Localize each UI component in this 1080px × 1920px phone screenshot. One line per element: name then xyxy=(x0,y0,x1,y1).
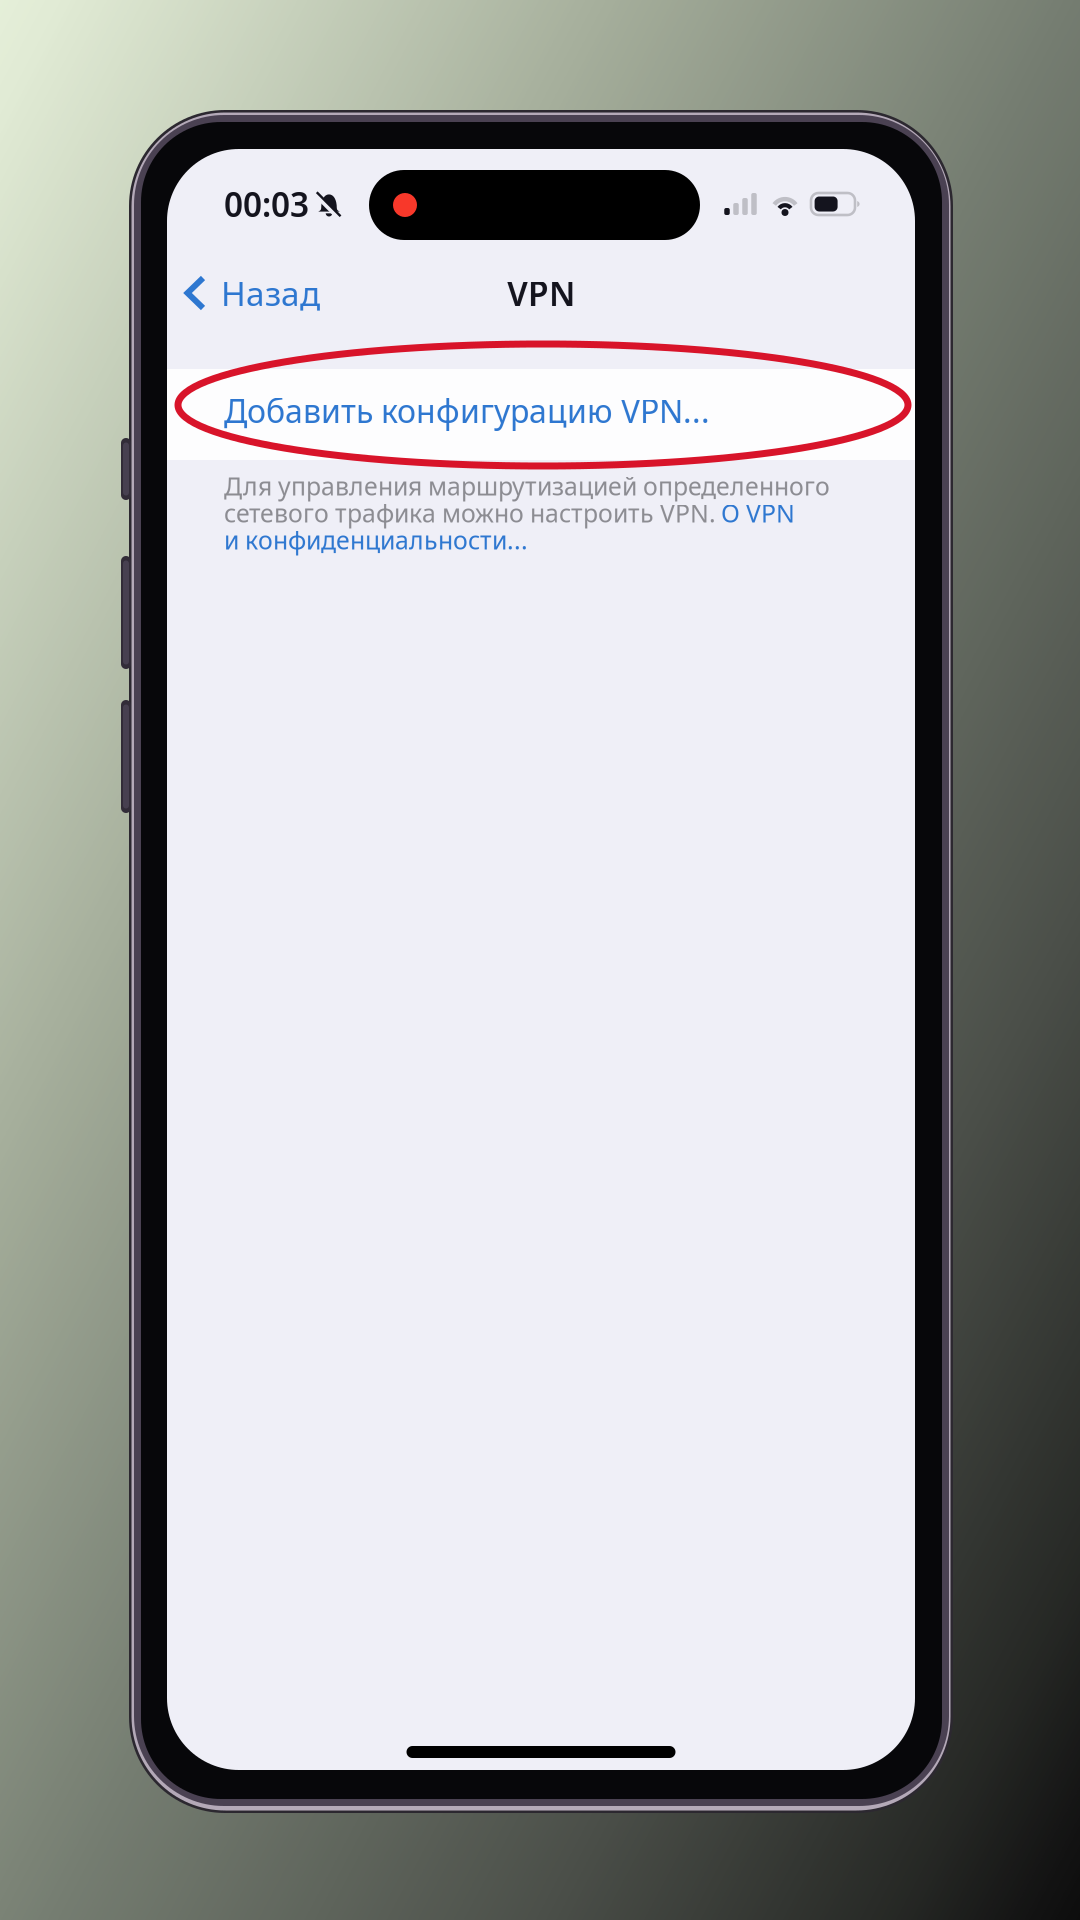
staticText: сетевого трафика можно настроить VPN. xyxy=(224,496,716,530)
staticText: О VPN xyxy=(721,496,795,530)
staticText: 00:03 xyxy=(224,182,309,226)
button[interactable]: и конфиденциальности... xyxy=(224,523,528,557)
button[interactable]: О VPN xyxy=(721,496,795,530)
staticText: и конфиденциальности... xyxy=(224,523,528,557)
staticText: Назад xyxy=(221,271,320,315)
staticText: Добавить конфигурацию VPN... xyxy=(224,389,710,432)
button[interactable]: Назад xyxy=(167,259,342,327)
staticText: VPN xyxy=(507,271,575,315)
button[interactable]: Добавить конфигурацию VPN... xyxy=(167,369,915,460)
staticText: Для управления маршрутизацией определенн… xyxy=(224,469,830,503)
